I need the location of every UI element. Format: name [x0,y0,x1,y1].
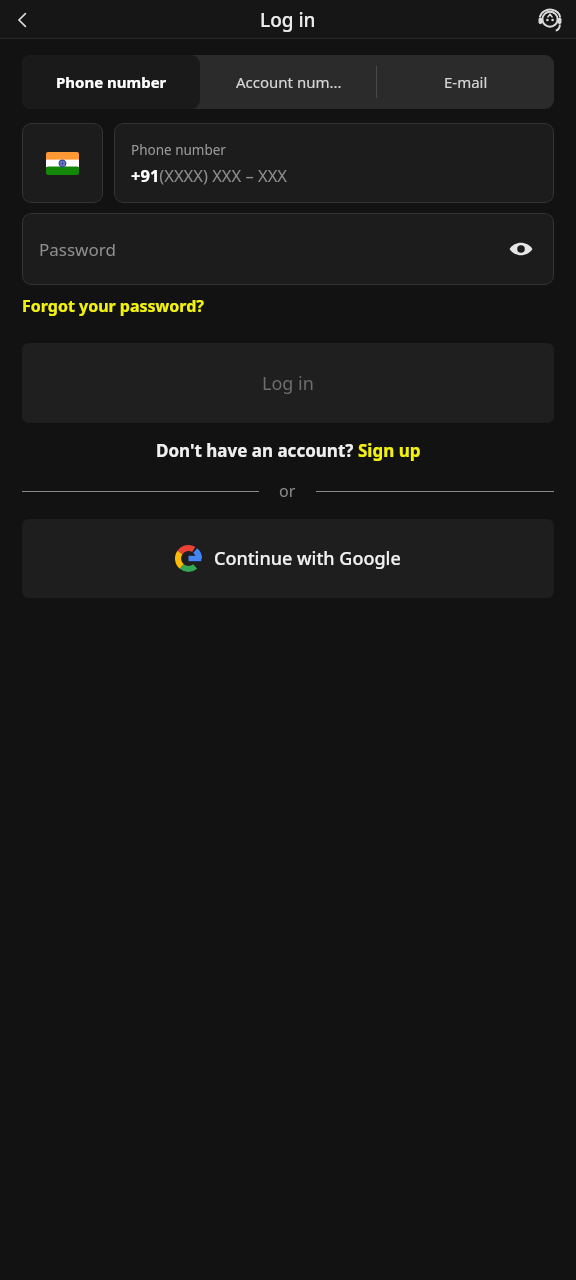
button[interactable]: Show password [502,230,540,268]
button[interactable]: Sign up [358,439,421,462]
staticText: Log in [260,7,316,33]
staticText: Phone number [131,141,226,159]
staticText: Don't have an account? [156,439,358,462]
button[interactable]: Forgot your password? [22,295,204,317]
staticText: or [279,480,296,502]
staticText: Continue with Google [214,546,401,571]
staticText: +91(XXXX) XXX – XXX [131,164,288,186]
button[interactable]: Password [22,213,554,285]
button[interactable]: Continue with Google [22,519,554,598]
button[interactable]: Account num... [200,55,377,109]
button[interactable]: Log in [22,343,554,423]
button[interactable]: Country code India [22,123,103,203]
button[interactable]: E-mail [377,55,554,109]
staticText: Forgot your password? [22,295,204,317]
staticText: Sign up [358,439,421,462]
staticText: Phone number [56,72,167,92]
button[interactable]: Back [3,0,43,39]
button[interactable]: Phone number [114,123,554,203]
staticText: E-mail [444,72,488,92]
staticText: Password [39,238,116,261]
button[interactable]: Support [530,0,570,39]
staticText: Log in [262,371,314,396]
staticText: Account num... [236,72,342,92]
button[interactable]: Phone number [22,55,200,109]
